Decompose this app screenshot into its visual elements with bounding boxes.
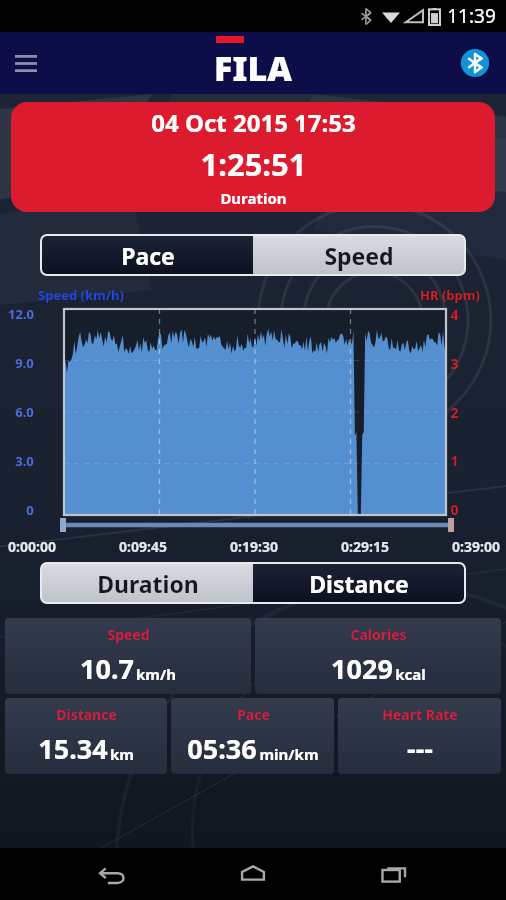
staticText: Duration (97, 568, 199, 599)
button[interactable]: Speed (253, 236, 464, 274)
button[interactable]: Duration (42, 564, 253, 602)
staticText: km/h (136, 664, 176, 684)
staticText: Pace (237, 705, 270, 724)
staticText: Distance (56, 705, 117, 724)
staticText: 0:29:15 (341, 537, 389, 556)
staticText: Speed (km/h) (38, 286, 124, 304)
staticText: Speed (324, 240, 394, 271)
staticText: kcal (395, 664, 426, 684)
button[interactable]: Home (224, 848, 282, 900)
staticText: 0:39:00 (452, 537, 500, 556)
button[interactable]: Menu (0, 37, 52, 89)
button[interactable]: Back (83, 848, 141, 900)
button[interactable]: 04 Oct 2015 17:53 (11, 102, 495, 212)
staticText: 0:09:45 (119, 537, 167, 556)
staticText: Speed (107, 625, 150, 644)
button[interactable]: Heart Rate (338, 698, 501, 774)
button[interactable]: Recent apps (365, 848, 423, 900)
button[interactable]: Calories (255, 618, 501, 694)
staticText: 04 Oct 2015 17:53 (151, 106, 356, 139)
staticText: Duration (220, 188, 287, 208)
staticText: Calories (350, 625, 407, 644)
staticText: 1 (450, 451, 459, 470)
staticText: --- (407, 730, 433, 767)
staticText: 15.34 (38, 730, 108, 767)
staticText: Heart Rate (382, 705, 458, 724)
button[interactable]: Pace (171, 698, 334, 774)
staticText: 0 (450, 500, 459, 519)
staticText: 3.0 (15, 452, 34, 470)
staticText: 1:25:51 (200, 143, 307, 185)
staticText: 0:19:30 (230, 537, 278, 556)
staticText: 6.0 (15, 403, 34, 421)
staticText: 1029 (331, 650, 393, 687)
staticText: HR (bpm) (420, 286, 480, 304)
staticText: 9.0 (15, 354, 34, 372)
staticText: 10.7 (80, 650, 134, 687)
button[interactable]: Speed (5, 618, 251, 694)
staticText: 05:36 (187, 730, 257, 767)
staticText: 4 (450, 305, 459, 324)
staticText: 12.0 (8, 305, 34, 323)
staticText: Distance (309, 568, 409, 599)
button[interactable]: Bluetooth (454, 42, 496, 84)
button[interactable]: Distance (253, 564, 464, 602)
staticText: km (110, 744, 134, 764)
staticText: 2 (450, 403, 459, 422)
staticText: 0 (26, 501, 34, 519)
staticText: 11:39 (447, 3, 496, 29)
button[interactable]: Distance (5, 698, 167, 774)
button[interactable]: Pace (42, 236, 253, 274)
staticText: FILA (214, 45, 292, 91)
staticText: 0:00:00 (8, 537, 56, 556)
staticText: 3 (450, 354, 459, 373)
staticText: Pace (121, 240, 175, 271)
staticText: min/km (259, 744, 319, 764)
